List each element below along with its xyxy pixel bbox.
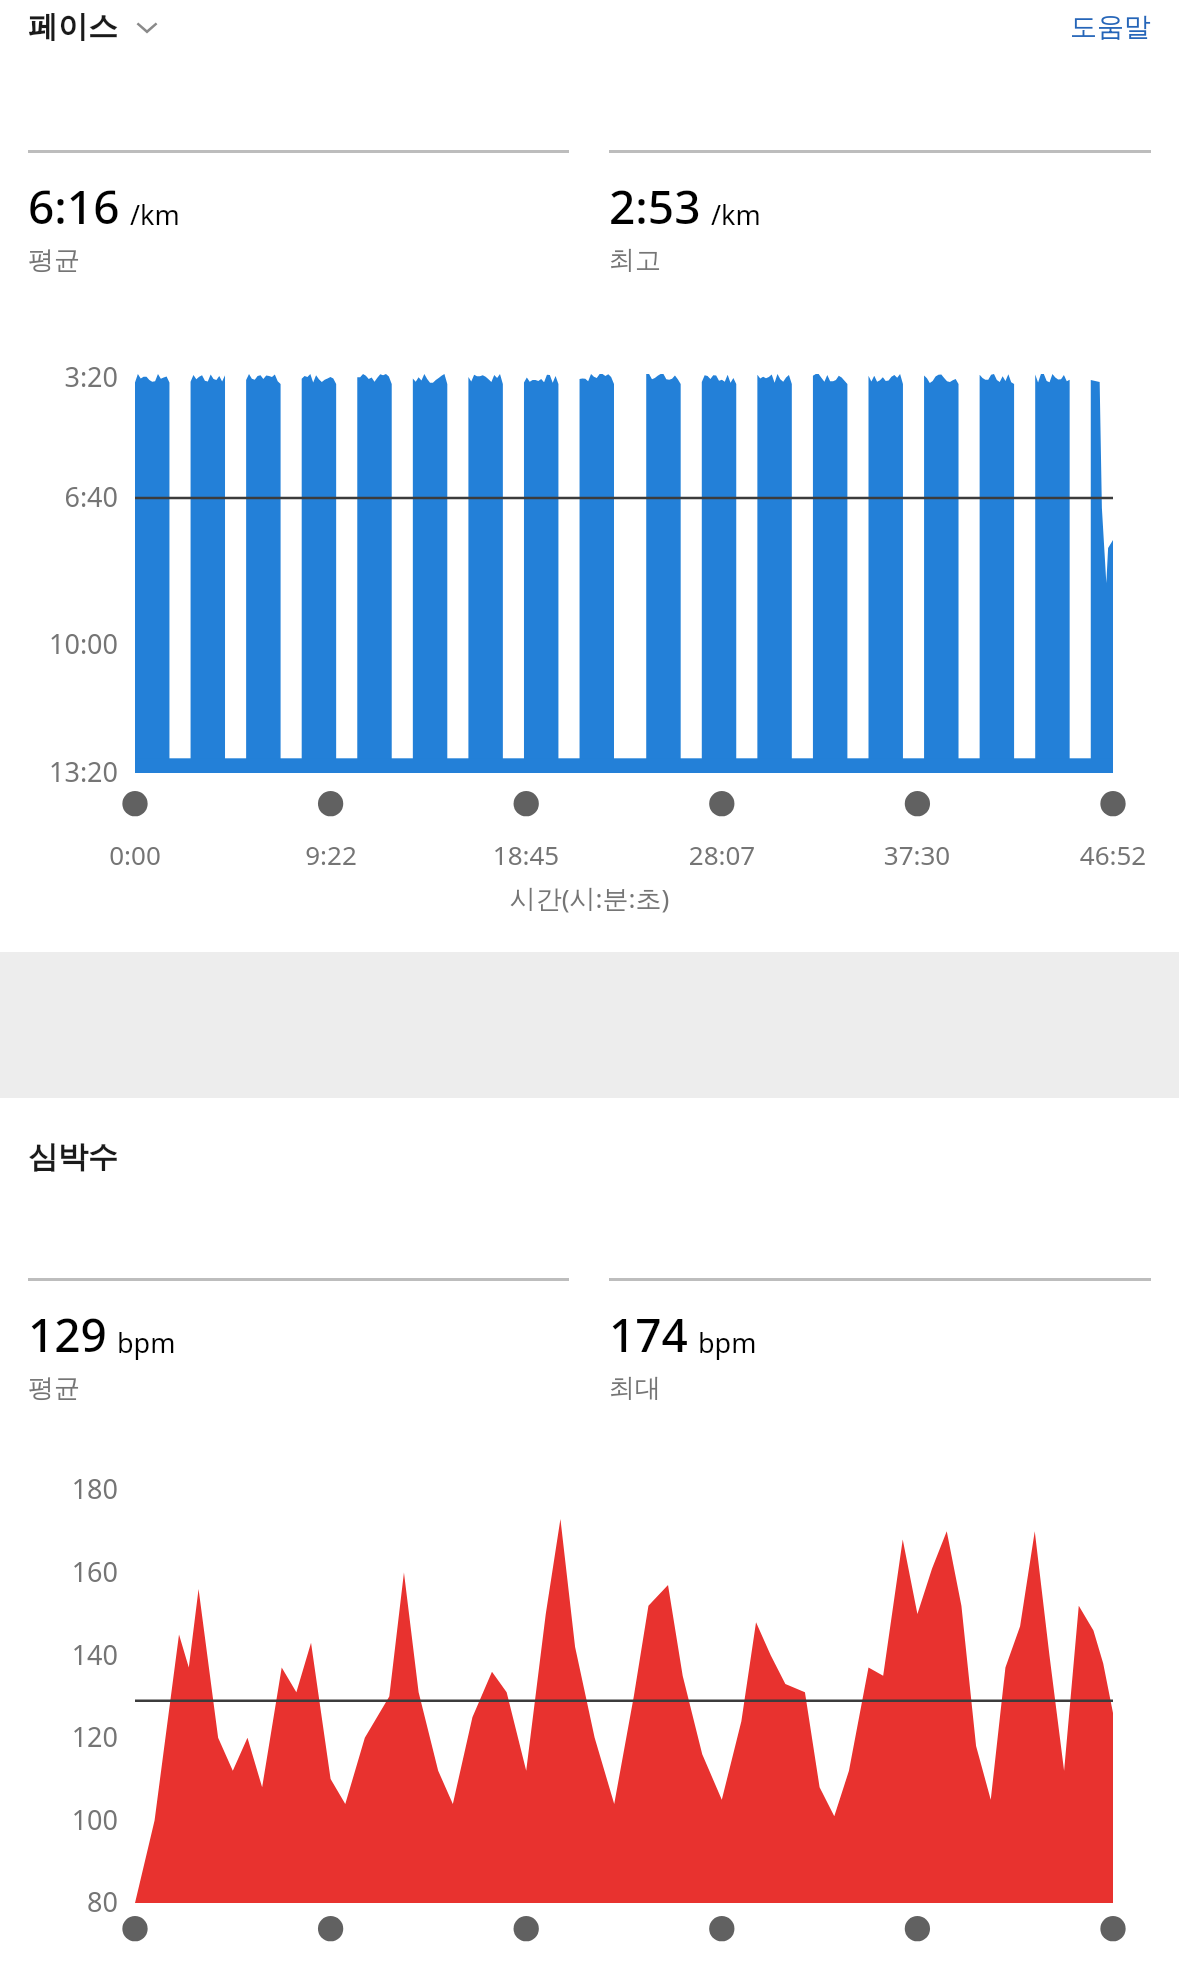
staticText: bpm — [117, 1324, 176, 1361]
staticText: 120 — [0, 1718, 118, 1755]
button[interactable]: 심박수 — [28, 1138, 118, 1176]
other: Expand pace options — [132, 12, 162, 42]
staticText: 174 — [609, 1303, 688, 1366]
staticText: /km — [711, 196, 761, 233]
button[interactable]: 129 — [28, 1278, 569, 1405]
staticText: 80 — [0, 1883, 118, 1920]
button[interactable]: 6:16 — [28, 150, 569, 277]
staticText: 3:20 — [0, 358, 118, 395]
button[interactable]: 174 — [609, 1278, 1151, 1405]
staticText: 0:00 — [65, 837, 205, 872]
staticText: 140 — [0, 1636, 118, 1673]
staticText: 평균 — [28, 1372, 80, 1405]
staticText: 180 — [0, 1470, 118, 1507]
staticText: 최대 — [609, 1372, 661, 1405]
staticText: 2:53 — [609, 175, 701, 238]
button[interactable]: 페이스 — [28, 8, 162, 46]
staticText: 160 — [0, 1553, 118, 1590]
staticText: bpm — [698, 1324, 757, 1361]
staticText: 18:45 — [456, 837, 596, 872]
staticText: 도움말 — [1070, 10, 1151, 44]
staticText: /km — [130, 196, 180, 233]
staticText: 100 — [0, 1801, 118, 1838]
staticText: 6:16 — [28, 175, 120, 238]
staticText: 9:22 — [261, 837, 401, 872]
staticText: 시간(시:분:초) — [0, 880, 1179, 916]
staticText: 심박수 — [28, 1138, 118, 1176]
staticText: 129 — [28, 1303, 107, 1366]
staticText: 페이스 — [28, 8, 118, 46]
staticText: 10:00 — [0, 625, 118, 662]
staticText: 13:20 — [0, 753, 118, 790]
staticText: 28:07 — [652, 837, 792, 872]
staticText: 최고 — [609, 244, 661, 277]
staticText: 6:40 — [0, 478, 118, 515]
staticText: 46:52 — [1043, 837, 1179, 872]
button[interactable]: 2:53 — [609, 150, 1151, 277]
button[interactable]: 도움말 — [1070, 10, 1151, 44]
staticText: 평균 — [28, 244, 80, 277]
staticText: 37:30 — [847, 837, 987, 872]
